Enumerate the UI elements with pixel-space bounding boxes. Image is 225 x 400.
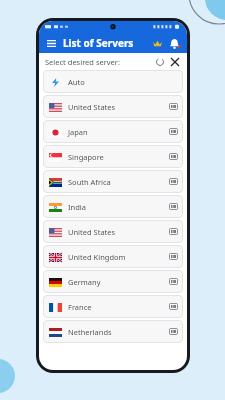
staticText: United States (68, 227, 116, 237)
staticText: United Kingdom (68, 252, 126, 262)
button[interactable]: Netherlands (43, 320, 183, 343)
button[interactable]: Open navigation menu (44, 36, 58, 50)
staticText: Germany (68, 277, 101, 287)
staticText: List of Servers (63, 36, 134, 50)
button[interactable]: United States (43, 95, 183, 118)
button[interactable]: Auto (43, 70, 183, 93)
staticText: Select desired server: (45, 57, 120, 67)
button[interactable]: Germany (43, 270, 183, 293)
button[interactable]: South Africa (43, 170, 183, 193)
staticText: United States (68, 102, 116, 112)
button[interactable]: Japan (43, 120, 183, 143)
staticText: France (68, 302, 92, 312)
staticText: India (68, 202, 86, 212)
button[interactable]: Refresh (153, 55, 166, 68)
staticText: South Africa (68, 177, 111, 187)
button[interactable]: Notifications (166, 35, 182, 51)
button[interactable]: Close (168, 55, 181, 68)
staticText: Japan (68, 127, 88, 137)
staticText: Netherlands (68, 327, 112, 337)
staticText: Singapore (68, 152, 104, 162)
button[interactable]: Premium (149, 35, 165, 51)
button[interactable]: United Kingdom (43, 245, 183, 268)
button[interactable]: France (43, 295, 183, 318)
button[interactable]: United States (43, 220, 183, 243)
button[interactable]: India (43, 195, 183, 218)
button[interactable]: Singapore (43, 145, 183, 168)
staticText: Auto (68, 77, 85, 87)
